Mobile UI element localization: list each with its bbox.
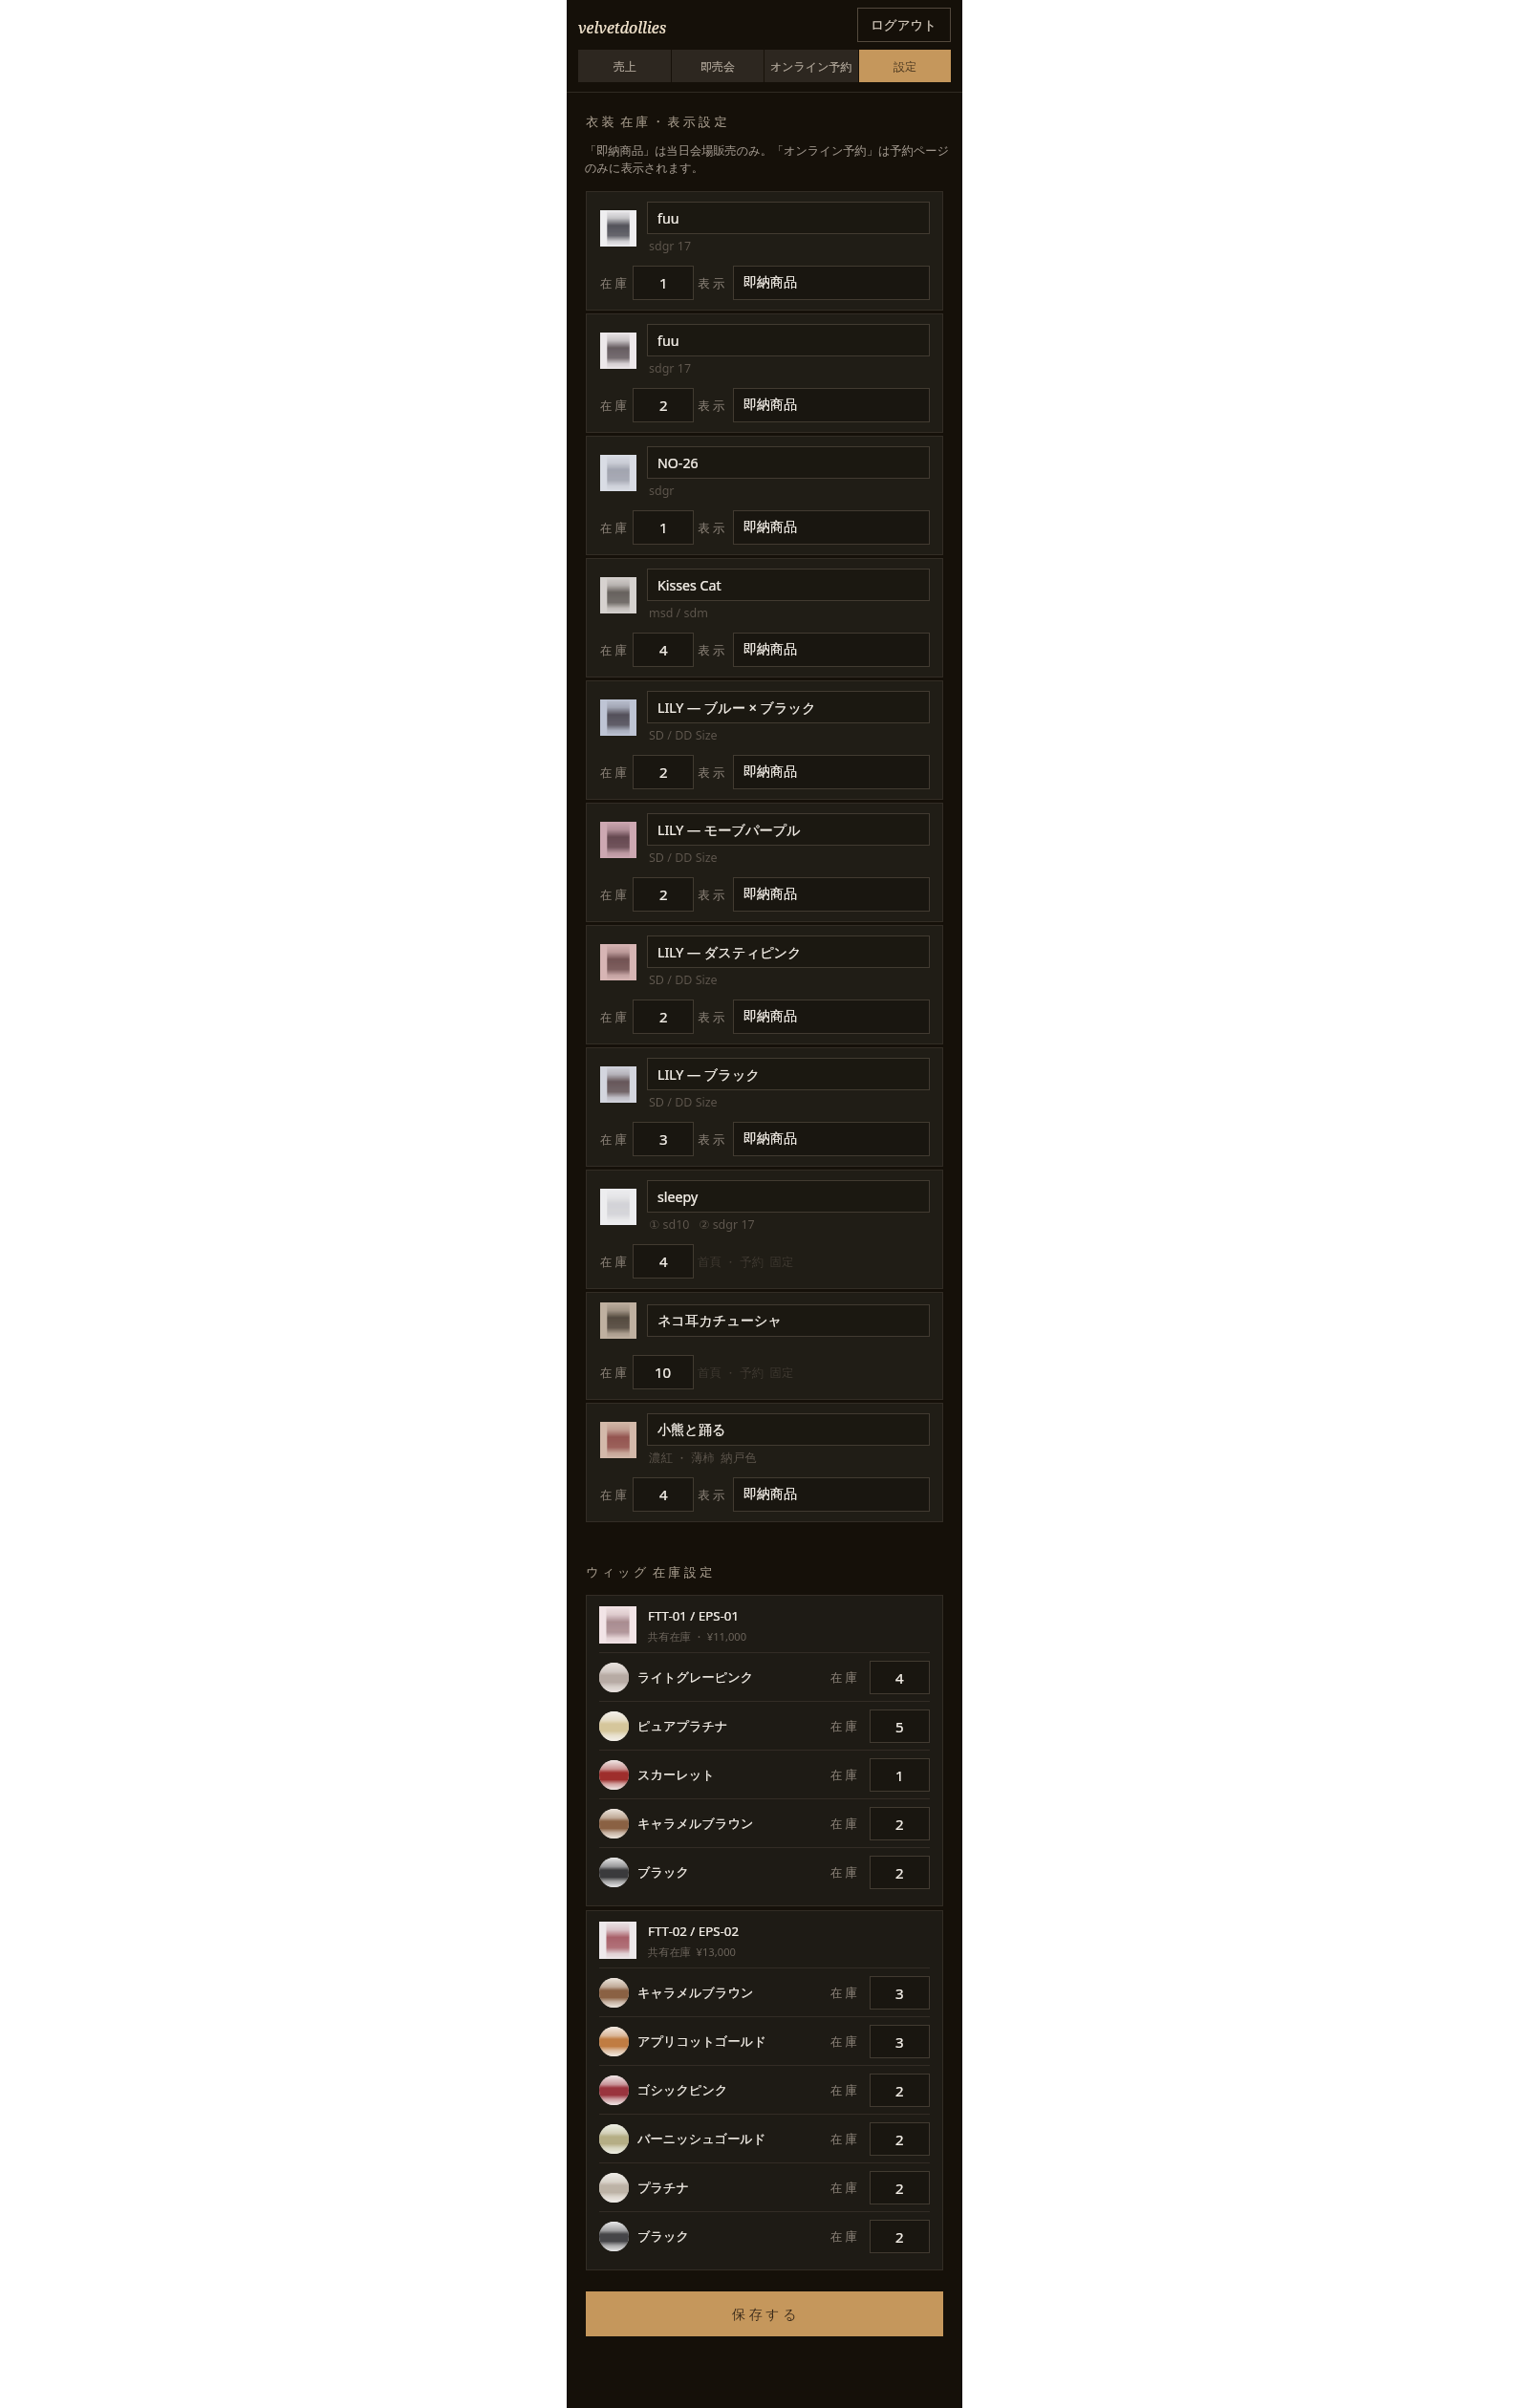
- staticText: ウ ィ ッ グ 在 庫 設 定: [586, 1563, 713, 1580]
- button[interactable]: オンライン予約: [764, 50, 858, 82]
- button[interactable]: Product photo: [586, 1292, 943, 1400]
- button[interactable]: 2: [870, 2220, 930, 2253]
- button[interactable]: Log out: [857, 8, 951, 42]
- other: Wig colour swatch: [599, 2222, 629, 2251]
- button[interactable]: 即納商品: [733, 266, 930, 300]
- staticText: 表 示: [698, 642, 725, 658]
- button[interactable]: ネコ耳カチューシャ: [647, 1304, 930, 1337]
- button[interactable]: 2: [870, 2074, 930, 2107]
- staticText: 表 示: [698, 275, 725, 291]
- staticText: Kisses Cat: [657, 576, 721, 594]
- button[interactable]: 即納商品: [733, 877, 930, 912]
- staticText: 表 示: [698, 887, 725, 903]
- button[interactable]: Wig colour swatch: [599, 1702, 930, 1750]
- button[interactable]: 4: [633, 1244, 694, 1279]
- other: Product photo: [600, 333, 636, 369]
- staticText: 在 庫: [830, 1669, 858, 1686]
- staticText: 表 示: [698, 398, 725, 414]
- button[interactable]: Wig colour swatch: [599, 2066, 930, 2114]
- button[interactable]: Wig colour swatch: [599, 1751, 930, 1798]
- button[interactable]: 3: [870, 1976, 930, 2010]
- button[interactable]: fuu: [647, 202, 930, 234]
- staticText: 在 庫: [830, 1864, 858, 1881]
- button[interactable]: 2: [633, 877, 694, 912]
- button[interactable]: LILY — モーブパープル: [647, 813, 930, 846]
- button[interactable]: Product photo: [586, 1403, 943, 1522]
- other: Wig colour swatch: [599, 2124, 629, 2154]
- button[interactable]: Product photo: [586, 1170, 943, 1289]
- staticText: 1: [659, 273, 668, 292]
- button[interactable]: Wig colour swatch: [599, 2115, 930, 2162]
- other: Wig colour swatch: [599, 1858, 629, 1887]
- button[interactable]: 2: [633, 755, 694, 789]
- staticText: 在 庫: [830, 1985, 858, 2001]
- button[interactable]: LILY — ブルー × ブラック: [647, 691, 930, 723]
- button[interactable]: 5: [870, 1709, 930, 1743]
- button[interactable]: Product photo: [586, 803, 943, 922]
- button[interactable]: Product photo: [586, 925, 943, 1044]
- button[interactable]: 1: [633, 510, 694, 545]
- button[interactable]: Wig colour swatch: [599, 1968, 930, 2016]
- staticText: 在 庫: [600, 887, 628, 903]
- staticText: FTT-02 / EPS-02: [648, 1923, 740, 1940]
- button[interactable]: 3: [870, 2025, 930, 2058]
- staticText: 在 庫: [600, 1009, 628, 1025]
- button[interactable]: 即納商品: [733, 755, 930, 789]
- button[interactable]: 即納商品: [733, 1122, 930, 1156]
- button[interactable]: 保 存 す る: [586, 2291, 943, 2336]
- other: Product photo: [600, 1066, 636, 1103]
- button[interactable]: 4: [633, 1477, 694, 1512]
- button[interactable]: Product photo: [586, 680, 943, 800]
- staticText: ① sd10 ② sdgr 17: [649, 1216, 755, 1233]
- button[interactable]: Wig colour swatch: [599, 1848, 930, 1896]
- button[interactable]: 10: [633, 1355, 694, 1389]
- button[interactable]: 小熊と踊る: [647, 1413, 930, 1446]
- button[interactable]: Wig colour swatch: [599, 2163, 930, 2211]
- button[interactable]: Product photo: [586, 191, 943, 311]
- button[interactable]: 4: [633, 633, 694, 667]
- button[interactable]: Kisses Cat: [647, 569, 930, 601]
- other: Product photo: [600, 210, 636, 247]
- button[interactable]: 2: [870, 2171, 930, 2204]
- other: Wig colour swatch: [599, 1760, 629, 1790]
- button[interactable]: 2: [633, 1000, 694, 1034]
- button[interactable]: Product photo: [586, 436, 943, 555]
- staticText: 在 庫: [830, 2033, 858, 2050]
- button[interactable]: Product photo: [586, 313, 943, 433]
- button[interactable]: Wig colour swatch: [599, 2212, 930, 2260]
- staticText: fuu: [657, 209, 679, 227]
- button[interactable]: 即納商品: [733, 510, 930, 545]
- button[interactable]: 即売会: [672, 50, 764, 82]
- button[interactable]: 3: [633, 1122, 694, 1156]
- button[interactable]: 2: [633, 388, 694, 422]
- staticText: 在 庫: [600, 1487, 628, 1503]
- button[interactable]: LILY — ダスティピンク: [647, 935, 930, 968]
- button[interactable]: 即納商品: [733, 1477, 930, 1512]
- button[interactable]: Product photo: [586, 1047, 943, 1167]
- button[interactable]: Product photo: [586, 558, 943, 677]
- button[interactable]: 即納商品: [733, 1000, 930, 1034]
- button[interactable]: sleepy: [647, 1180, 930, 1213]
- button[interactable]: NO-26: [647, 446, 930, 479]
- button[interactable]: 2: [870, 2122, 930, 2156]
- button[interactable]: fuu: [647, 324, 930, 356]
- button[interactable]: 1: [870, 1758, 930, 1792]
- button[interactable]: 即納商品: [733, 633, 930, 667]
- button[interactable]: LILY — ブラック: [647, 1058, 930, 1090]
- button[interactable]: 1: [633, 266, 694, 300]
- button[interactable]: Wig colour swatch: [599, 1653, 930, 1701]
- button[interactable]: 4: [870, 1661, 930, 1694]
- button[interactable]: 2: [870, 1856, 930, 1889]
- button[interactable]: Wig colour swatch: [599, 2017, 930, 2065]
- button[interactable]: 設定: [859, 50, 951, 82]
- button[interactable]: 売上: [578, 50, 671, 82]
- button[interactable]: Wig colour swatch: [599, 1799, 930, 1847]
- staticText: 即納商品: [743, 1130, 797, 1148]
- staticText: アプリコットゴールド: [637, 2033, 830, 2050]
- button[interactable]: 2: [870, 1807, 930, 1840]
- staticText: 即納商品: [743, 274, 797, 291]
- button[interactable]: 即納商品: [733, 388, 930, 422]
- staticText: 3: [895, 2032, 904, 2052]
- staticText: ブラック: [637, 2228, 830, 2245]
- staticText: プラチナ: [637, 2180, 830, 2196]
